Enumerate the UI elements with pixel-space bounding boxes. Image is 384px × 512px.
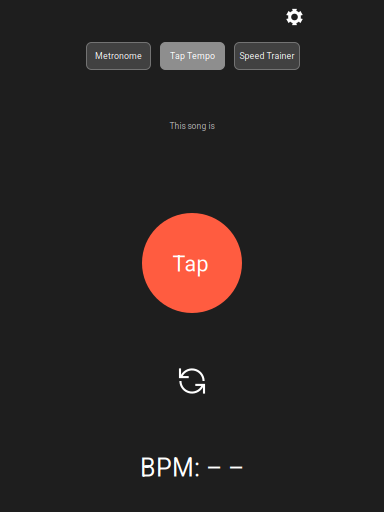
staticText: Metronome xyxy=(95,51,142,61)
staticText: Tap Tempo xyxy=(170,51,215,61)
button[interactable]: Metronome xyxy=(86,42,150,69)
button[interactable]: Settings xyxy=(279,2,309,32)
staticText: This song is xyxy=(169,121,214,131)
staticText: BPM: – – xyxy=(140,453,244,483)
button[interactable]: Reset tempo xyxy=(172,361,212,401)
staticText: Speed Trainer xyxy=(239,51,294,61)
button[interactable]: Speed Trainer xyxy=(234,42,299,69)
staticText: Tap xyxy=(172,251,208,277)
button[interactable]: Tap Tempo xyxy=(160,42,224,69)
button[interactable]: Tap xyxy=(142,213,242,313)
